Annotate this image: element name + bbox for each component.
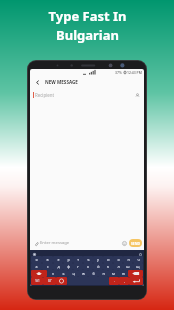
button[interactable]: и [103,256,113,263]
button[interactable]: г [73,263,83,270]
button[interactable]: Back [33,78,42,87]
staticText: ъ [87,257,90,262]
staticText: х [87,264,89,269]
staticText: р [67,257,70,262]
button[interactable]: е [53,256,63,263]
button[interactable]: ь [58,270,68,277]
staticText: б [92,271,95,276]
button[interactable]: х [83,263,93,270]
button[interactable]: д [53,263,63,270]
button[interactable]: б [88,270,98,277]
button[interactable]: Emoji [120,239,128,247]
staticText: SEND [131,241,141,246]
button[interactable]: Clipboard [138,252,142,256]
staticText: и [107,257,110,262]
staticText: Type Fast In [48,7,127,25]
staticText: г [77,264,79,269]
button[interactable]: н [98,270,108,277]
staticText: с [47,264,49,269]
button[interactable]: Add contact [133,91,141,99]
button[interactable]: . [109,277,119,285]
staticText: Enter message [40,240,70,246]
button[interactable]: ч [133,256,143,263]
button[interactable]: у [93,256,103,263]
button[interactable]: ю [118,270,128,277]
staticText: в [46,257,49,262]
button[interactable]: Attach [32,239,40,247]
button[interactable]: й [93,263,103,270]
button[interactable]: ш [123,263,133,270]
staticText: ж [82,271,85,276]
staticText: у [97,257,99,262]
button[interactable]: Recipient [33,88,141,101]
button[interactable]: а [31,263,42,270]
staticText: NEW MESSAGE [45,79,78,85]
button[interactable]: , [119,277,129,285]
button[interactable]: Emoji [56,277,67,285]
staticText: й [97,264,100,269]
button[interactable]: Enter [129,277,143,285]
staticText: т [77,257,79,262]
button[interactable]: щ [133,263,143,270]
button[interactable]: л [113,263,123,270]
staticText: ш [126,264,130,269]
staticText: а [35,264,38,269]
button[interactable]: з [47,270,58,277]
staticText: щ [136,264,140,269]
staticText: е [57,257,60,262]
button[interactable]: Backspace [128,270,143,277]
button[interactable]: р [63,256,73,263]
staticText: к [107,264,109,269]
staticText: м [112,271,115,276]
button[interactable]: т [73,256,83,263]
staticText: ф [67,264,70,269]
button[interactable]: ц [68,270,78,277]
button[interactable]: Shift [31,270,47,277]
button[interactable]: я [31,256,42,263]
button[interactable]: о [113,256,123,263]
staticText: Bulgarian [56,26,119,44]
staticText: БГ [48,279,52,283]
button[interactable]: к [103,263,113,270]
button[interactable]: БГ [43,277,56,285]
button[interactable]: SEND [129,239,142,247]
staticText: 12:43 PM [127,70,142,75]
button[interactable]: п [123,256,133,263]
staticText: ч [137,257,140,262]
staticText: ь [62,271,65,276]
staticText: 37% [115,70,122,75]
staticText: Recipient [35,92,55,98]
button[interactable]: ъ [83,256,93,263]
button[interactable]: с [42,263,53,270]
staticText: з [52,271,54,276]
staticText: л [117,264,120,269]
staticText: , [124,279,125,283]
staticText: н [102,271,105,276]
staticText: п [127,257,130,262]
staticText: о [117,257,120,262]
staticText: я [35,257,38,262]
staticText: . [114,279,115,283]
button[interactable]: ж [78,270,88,277]
staticText: ц [72,271,75,276]
button[interactable]: ф [63,263,73,270]
staticText: ю [122,271,125,276]
button[interactable]: в [42,256,53,263]
button[interactable]: Settings [32,252,36,256]
staticText: д [57,264,60,269]
staticText: !#1 [35,279,40,283]
button[interactable]: м [108,270,118,277]
button[interactable]: !#1 [31,277,43,285]
